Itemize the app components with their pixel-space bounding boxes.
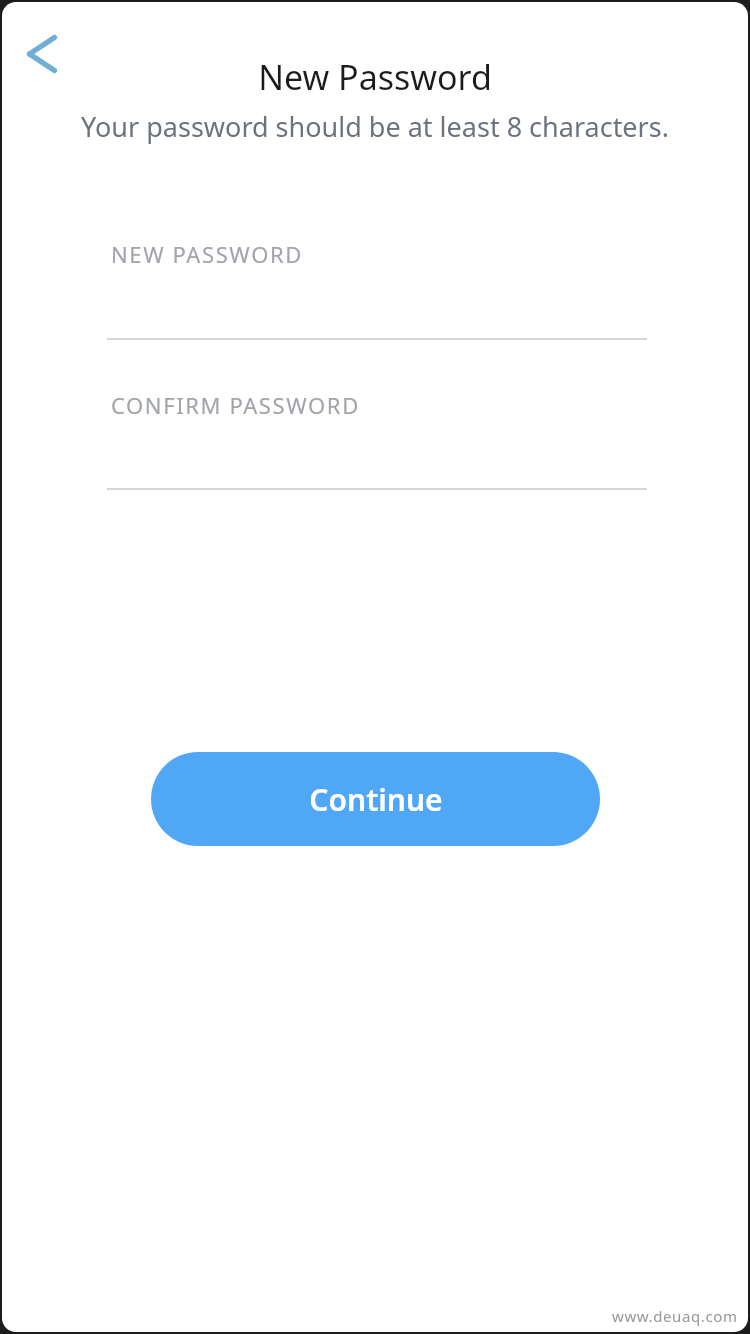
staticText: Continue: [309, 779, 443, 820]
staticText: CONFIRM PASSWORD: [111, 390, 360, 420]
button[interactable]: CONFIRM PASSWORD: [2, 368, 748, 496]
staticText: NEW PASSWORD: [111, 239, 303, 269]
staticText: Your password should be at least 8 chara…: [64, 108, 686, 145]
staticText: New Password: [2, 54, 748, 100]
button[interactable]: NEW PASSWORD: [2, 217, 748, 345]
staticText: www.deuaq.com: [612, 1306, 738, 1326]
button[interactable]: Back: [10, 16, 80, 86]
button[interactable]: Continue: [151, 752, 600, 846]
